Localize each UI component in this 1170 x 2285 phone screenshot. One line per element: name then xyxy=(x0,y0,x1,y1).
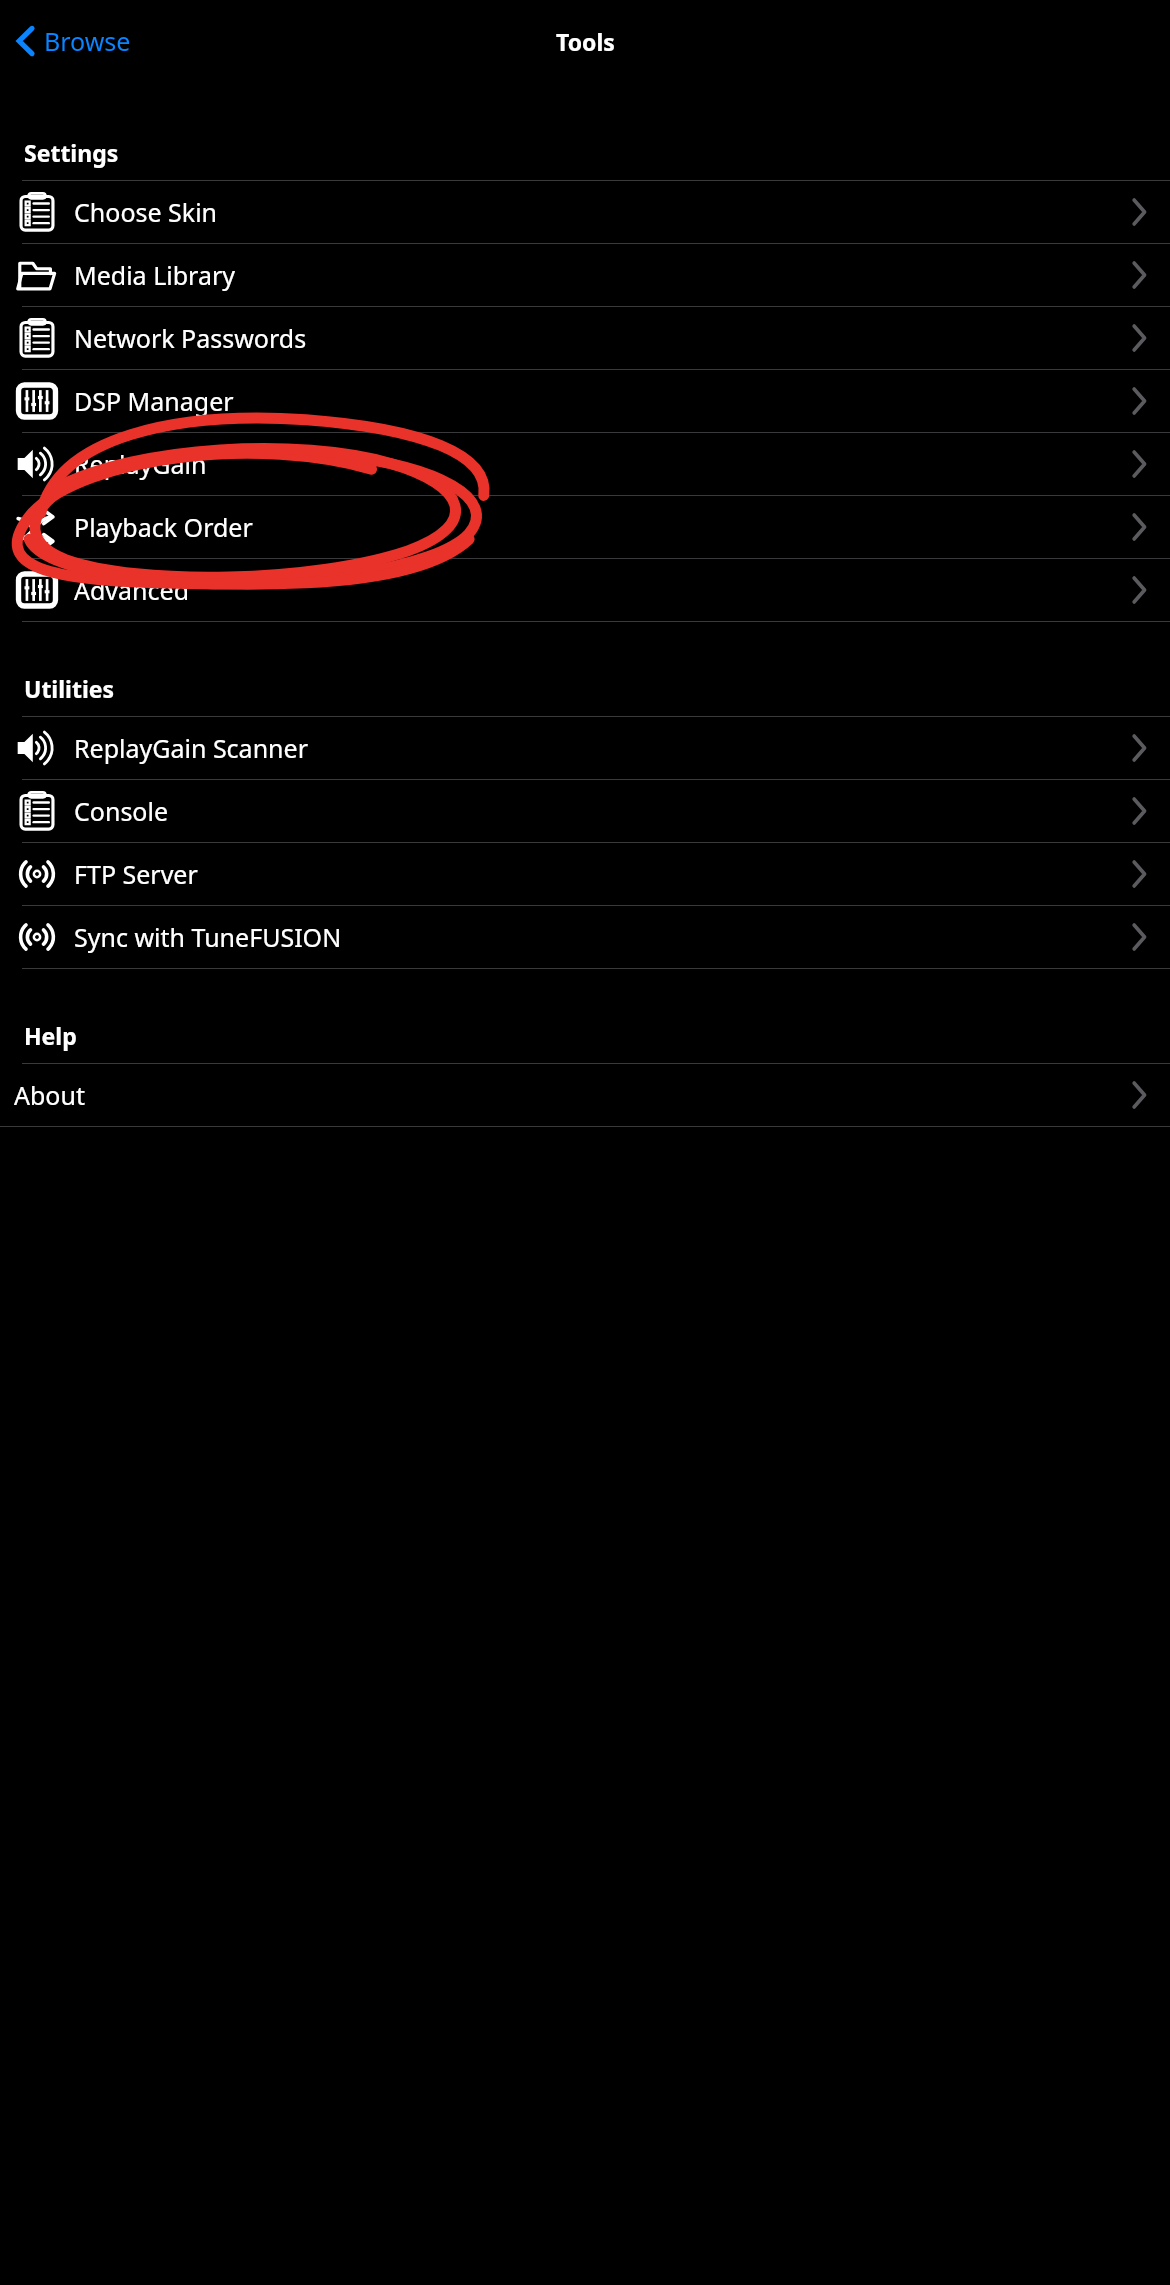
staticText: Media Library xyxy=(74,258,235,292)
button[interactable]: Playback Order xyxy=(0,496,1170,558)
button[interactable]: About xyxy=(0,1064,1170,1126)
staticText: Advanced xyxy=(74,573,190,607)
button[interactable]: Console xyxy=(0,780,1170,842)
staticText: FTP Server xyxy=(74,857,198,891)
button[interactable]: Media Library xyxy=(0,244,1170,306)
staticText: Sync with TuneFUSION xyxy=(74,920,342,954)
button[interactable]: Browse xyxy=(10,18,137,64)
button[interactable]: ReplayGain Scanner xyxy=(0,717,1170,779)
staticText: Tools xyxy=(556,26,615,57)
staticText: Help xyxy=(24,1020,77,1051)
staticText: Browse xyxy=(44,24,131,58)
button[interactable]: Choose Skin xyxy=(0,181,1170,243)
staticText: ReplayGain xyxy=(74,447,207,481)
staticText: Utilities xyxy=(24,673,115,704)
staticText: Choose Skin xyxy=(74,195,218,229)
staticText: Network Passwords xyxy=(74,321,307,355)
staticText: DSP Manager xyxy=(74,384,234,418)
staticText: Settings xyxy=(24,137,119,168)
button[interactable]: FTP Server xyxy=(0,843,1170,905)
staticText: Playback Order xyxy=(74,510,253,544)
button[interactable]: DSP Manager xyxy=(0,370,1170,432)
button[interactable]: Advanced xyxy=(0,559,1170,621)
button[interactable]: Network Passwords xyxy=(0,307,1170,369)
staticText: Console xyxy=(74,794,169,828)
button[interactable]: Sync with TuneFUSION xyxy=(0,906,1170,968)
button[interactable]: ReplayGain xyxy=(0,433,1170,495)
staticText: ReplayGain Scanner xyxy=(74,731,308,765)
staticText: About xyxy=(14,1078,85,1112)
